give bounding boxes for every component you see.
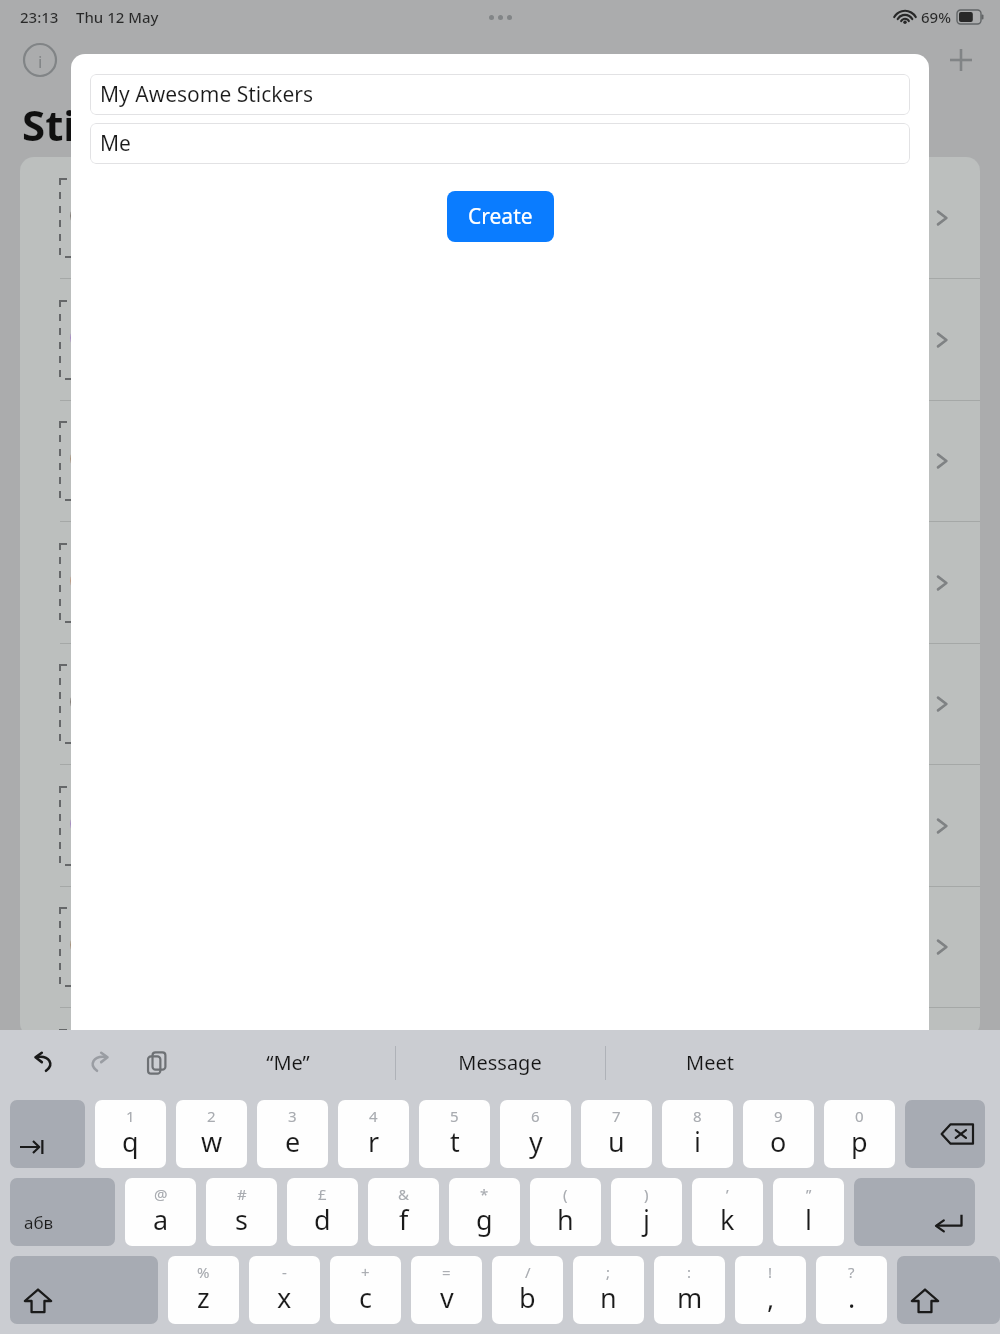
button[interactable]: shift xyxy=(897,1256,1000,1324)
button[interactable]: Add xyxy=(941,40,981,80)
staticText: Me xyxy=(100,129,131,158)
staticText: 3 xyxy=(288,1106,297,1126)
button[interactable]: tab xyxy=(10,1100,85,1168)
button[interactable]: 9 xyxy=(743,1100,814,1168)
button[interactable]: bksp xyxy=(905,1100,985,1168)
button[interactable]: Paste xyxy=(140,1046,174,1080)
staticText: s xyxy=(235,1201,248,1238)
staticText: 6 xyxy=(531,1106,540,1126)
button[interactable]: * xyxy=(449,1178,520,1246)
button[interactable] xyxy=(20,886,980,1008)
staticText: ; xyxy=(606,1262,611,1282)
button[interactable]: 0 xyxy=(824,1100,895,1168)
button[interactable]: Redo xyxy=(83,1046,117,1080)
staticText: Meet xyxy=(686,1049,734,1076)
button[interactable] xyxy=(20,765,980,887)
button[interactable]: 3 xyxy=(257,1100,328,1168)
button[interactable]: 4 xyxy=(338,1100,409,1168)
staticText: g xyxy=(476,1201,493,1238)
staticText: Stickers xyxy=(22,96,189,153)
button[interactable] xyxy=(20,157,980,279)
button[interactable]: : xyxy=(654,1256,725,1324)
button[interactable] xyxy=(20,400,980,522)
staticText: o xyxy=(770,1123,787,1160)
button[interactable]: shift xyxy=(10,1256,158,1324)
button[interactable]: - xyxy=(249,1256,320,1324)
staticText: # xyxy=(237,1184,247,1204)
staticText: y xyxy=(529,1123,543,1160)
staticText: m xyxy=(677,1279,703,1316)
button[interactable]: 7 xyxy=(581,1100,652,1168)
staticText: ( xyxy=(563,1184,568,1204)
staticText: 7 xyxy=(612,1106,621,1126)
button[interactable]: / xyxy=(492,1256,563,1324)
staticText: j xyxy=(643,1201,650,1238)
button[interactable]: ) xyxy=(611,1178,682,1246)
button[interactable]: # xyxy=(206,1178,277,1246)
button[interactable] xyxy=(20,643,980,765)
staticText: b xyxy=(519,1279,536,1316)
button[interactable]: 2 xyxy=(176,1100,247,1168)
button[interactable]: ! xyxy=(735,1256,806,1324)
staticText: Message xyxy=(458,1049,542,1076)
button[interactable]: ; xyxy=(573,1256,644,1324)
button[interactable]: 6 xyxy=(500,1100,571,1168)
button[interactable] xyxy=(20,279,980,401)
staticText: 5 xyxy=(450,1106,459,1126)
button[interactable]: Info xyxy=(22,42,58,78)
button[interactable]: “Me” xyxy=(180,1030,395,1095)
staticText: £ xyxy=(318,1184,327,1204)
staticText: t xyxy=(450,1123,460,1160)
staticText: 9 xyxy=(774,1106,783,1126)
staticText: ” xyxy=(806,1184,812,1204)
staticText: k xyxy=(720,1201,735,1238)
staticText: @ xyxy=(154,1184,168,1204)
button[interactable]: 8 xyxy=(662,1100,733,1168)
button[interactable] xyxy=(20,522,980,644)
button[interactable]: 5 xyxy=(419,1100,490,1168)
staticText: n xyxy=(600,1279,617,1316)
staticText: l xyxy=(805,1201,812,1238)
button[interactable] xyxy=(20,1008,980,1037)
button[interactable]: Me xyxy=(90,123,910,164)
staticText: z xyxy=(197,1279,210,1316)
staticText: - xyxy=(282,1262,287,1282)
button[interactable]: Meet xyxy=(605,1030,815,1095)
button[interactable]: Create xyxy=(447,191,554,242)
button[interactable]: ” xyxy=(773,1178,844,1246)
staticText: My Awesome Stickers xyxy=(100,80,314,109)
button[interactable]: ? xyxy=(816,1256,887,1324)
staticText: a xyxy=(153,1201,169,1238)
button[interactable]: + xyxy=(330,1256,401,1324)
staticText: : xyxy=(687,1262,692,1282)
button[interactable]: 1 xyxy=(95,1100,166,1168)
button[interactable]: абв xyxy=(10,1178,115,1246)
button[interactable]: = xyxy=(411,1256,482,1324)
button[interactable]: ret xyxy=(854,1178,975,1246)
staticText: 69% xyxy=(921,7,951,27)
staticText: f xyxy=(399,1201,409,1238)
staticText: p xyxy=(851,1123,868,1160)
button[interactable]: My Awesome Stickers xyxy=(90,74,910,115)
staticText: Create xyxy=(468,202,533,231)
staticText: ? xyxy=(848,1262,855,1282)
staticText: v xyxy=(440,1279,454,1316)
staticText: Thu 12 May xyxy=(76,7,159,27)
button[interactable]: @ xyxy=(125,1178,196,1246)
button[interactable]: % xyxy=(168,1256,239,1324)
staticText: . xyxy=(848,1279,856,1316)
button[interactable]: £ xyxy=(287,1178,358,1246)
button[interactable]: ’ xyxy=(692,1178,763,1246)
button[interactable]: Undo xyxy=(26,1046,60,1080)
staticText: d xyxy=(314,1201,331,1238)
button[interactable]: Message xyxy=(395,1030,605,1095)
staticText: h xyxy=(557,1201,574,1238)
staticText: 4 xyxy=(369,1106,378,1126)
staticText: 1 xyxy=(126,1106,135,1126)
staticText: 0 xyxy=(855,1106,864,1126)
button[interactable]: & xyxy=(368,1178,439,1246)
staticText: , xyxy=(767,1279,775,1316)
staticText: & xyxy=(398,1184,409,1204)
button[interactable]: ( xyxy=(530,1178,601,1246)
staticText: * xyxy=(480,1184,489,1204)
